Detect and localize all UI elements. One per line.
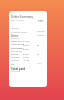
staticText: $12.00 — [23, 40, 30, 43]
staticText: Service — [11, 53, 19, 56]
staticText: ok — [37, 53, 40, 56]
staticText: Items — [11, 34, 19, 38]
staticText: London — [37, 30, 45, 33]
staticText: Paid — [38, 18, 43, 21]
staticText: 10% — [37, 62, 42, 65]
staticText: x2 — [37, 44, 40, 47]
staticText: $2.00 — [23, 53, 29, 56]
staticText: Tip — [11, 63, 15, 66]
staticText: Total paid — [11, 67, 26, 71]
staticText: Delivery fee — [11, 50, 23, 53]
staticText: Discount — [11, 59, 20, 62]
staticText: Garlic Bread — [11, 43, 25, 46]
staticText: $1.80 — [23, 56, 29, 59]
staticText: 3 items — [37, 34, 45, 37]
staticText: Mar 12, 2024 — [11, 19, 24, 22]
staticText: Delivery — [11, 27, 19, 30]
staticText: $6.50 — [23, 44, 29, 47]
staticText: Margherita — [11, 40, 23, 43]
staticText: #2841 — [38, 20, 45, 23]
staticText: -$1.00 — [23, 59, 30, 62]
staticText: $4.00 — [23, 48, 29, 51]
staticText: Soft Drinks — [11, 46, 24, 49]
staticText: Tax (8%) — [11, 56, 20, 59]
staticText: Subtotal — [11, 37, 19, 40]
staticText: Visa 4242 — [11, 70, 20, 73]
staticText: 12 Baker Street — [11, 31, 27, 34]
staticText: Order Summary — [11, 15, 34, 19]
